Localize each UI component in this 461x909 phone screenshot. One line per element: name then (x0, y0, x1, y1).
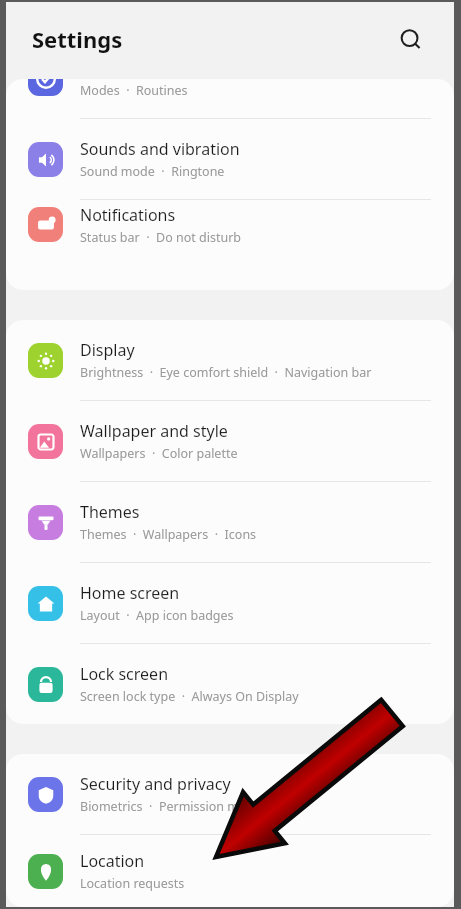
staticText: Display (80, 339, 135, 361)
button[interactable]: Modes and Routines (6, 79, 454, 119)
staticText: Biometrics · Permission manager (80, 798, 281, 815)
button[interactable]: Display (6, 320, 454, 401)
button[interactable]: Security and privacy (6, 754, 454, 835)
staticText: Lock screen (80, 663, 169, 685)
staticText: Themes (80, 501, 140, 523)
staticText: Location requests (80, 875, 185, 892)
staticText: Layout · App icon badges (80, 607, 234, 624)
button[interactable]: Wallpaper and style (6, 401, 454, 482)
staticText: Location (80, 850, 145, 872)
staticText: Security and privacy (80, 773, 231, 795)
staticText: Status bar · Do not disturb (80, 229, 242, 246)
button[interactable]: Themes (6, 482, 454, 563)
staticText: Themes · Wallpapers · Icons (80, 526, 257, 543)
staticText: Notifications (80, 204, 176, 226)
button[interactable]: Notifications (6, 200, 454, 249)
button[interactable]: Search (390, 19, 432, 61)
button[interactable]: Sounds and vibration (6, 119, 454, 200)
button[interactable]: Lock screen (6, 644, 454, 724)
button[interactable]: Location (6, 835, 454, 907)
staticText: Wallpapers · Color palette (80, 445, 238, 462)
staticText: Settings (32, 24, 123, 54)
staticText: Sound mode · Ringtone (80, 163, 225, 180)
button[interactable]: Home screen (6, 563, 454, 644)
staticText: Screen lock type · Always On Display (80, 688, 299, 705)
staticText: Wallpaper and style (80, 420, 228, 442)
staticText: Brightness · Eye comfort shield · Naviga… (80, 364, 372, 381)
staticText: Modes · Routines (80, 82, 188, 99)
staticText: Sounds and vibration (80, 138, 240, 160)
staticText: Home screen (80, 582, 180, 604)
